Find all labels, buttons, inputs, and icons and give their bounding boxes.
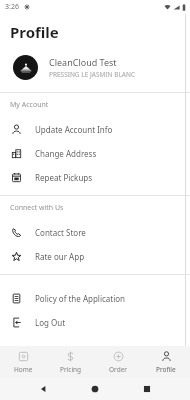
- staticText: CleanCloud Test: [49, 56, 117, 68]
- staticText: Log Out: [35, 317, 66, 328]
- staticText: Rate our App: [35, 251, 85, 262]
- staticText: Change Address: [35, 148, 97, 159]
- staticText: Profile: [10, 22, 59, 42]
- button[interactable]: Rate our App: [0, 244, 190, 268]
- button[interactable]: Log Out: [0, 310, 190, 334]
- button[interactable]: Policy of the Application: [0, 286, 190, 310]
- button[interactable]: CleanCloud Test: [0, 53, 190, 82]
- button[interactable]: Back: [34, 380, 52, 398]
- staticText: Order: [109, 365, 127, 374]
- staticText: My Account: [10, 100, 49, 110]
- staticText: Profile: [156, 365, 176, 374]
- staticText: PRESSING LE JASMIN BLANC: [49, 70, 136, 79]
- staticText: Contact Store: [35, 227, 86, 238]
- button[interactable]: Update Account Info: [0, 117, 190, 141]
- button[interactable]: Change Address: [0, 141, 190, 165]
- button[interactable]: Repeat Pickups: [0, 165, 190, 189]
- staticText: Update Account Info: [35, 124, 113, 135]
- staticText: Connect with Us: [10, 203, 64, 213]
- button[interactable]: Order: [94, 346, 142, 378]
- staticText: Policy of the Application: [35, 293, 126, 304]
- button[interactable]: Pricing: [47, 346, 94, 378]
- staticText: 3:26: [5, 2, 19, 12]
- button[interactable]: Home: [0, 346, 47, 378]
- button[interactable]: Profile: [142, 346, 190, 378]
- button[interactable]: Contact Store: [0, 220, 190, 244]
- staticText: Home: [14, 365, 33, 374]
- button[interactable]: Recent apps: [138, 380, 156, 398]
- button[interactable]: Home: [86, 380, 104, 398]
- staticText: Pricing: [60, 365, 82, 374]
- staticText: Repeat Pickups: [35, 172, 93, 183]
